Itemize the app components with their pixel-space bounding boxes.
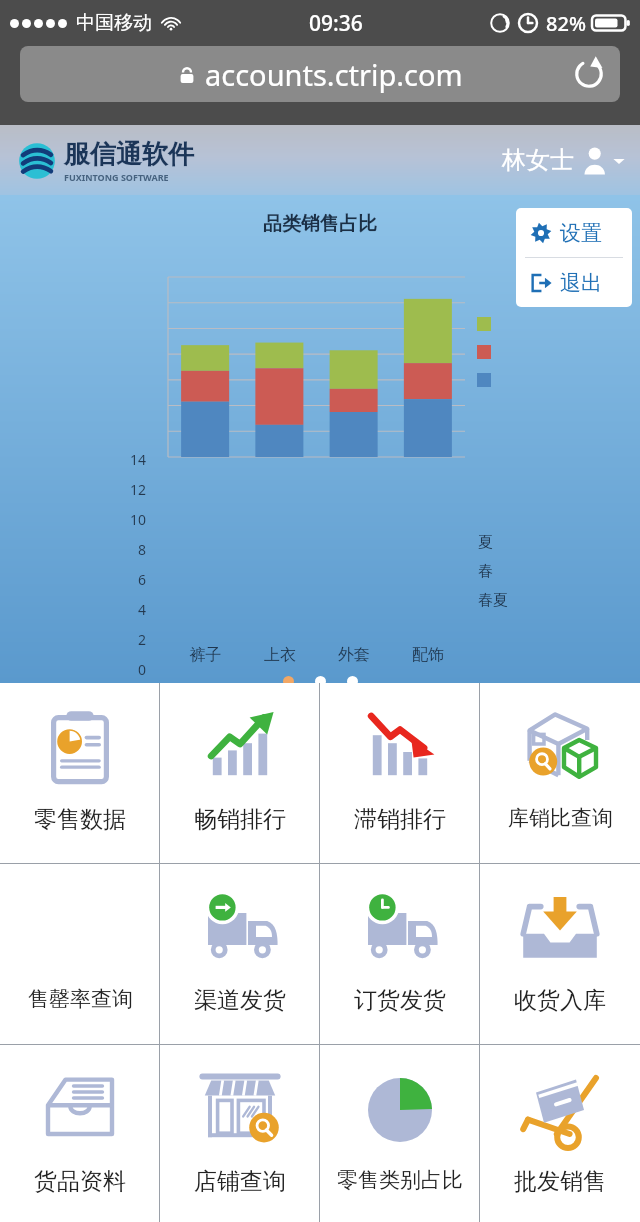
- staticText: 夏: [478, 533, 493, 552]
- staticText: 170, 000: [269, 737, 373, 772]
- staticText: 30天: [506, 737, 562, 773]
- staticText: 6: [124, 570, 146, 589]
- staticText: 售罄率查询: [28, 986, 133, 1012]
- staticText: 零售数据: [34, 805, 126, 834]
- button[interactable]: 林女士: [502, 144, 626, 176]
- staticText: 库销比查询: [508, 805, 613, 831]
- staticText: 批发销售: [514, 1167, 606, 1196]
- staticText: 零售类别占比: [337, 1167, 463, 1193]
- button[interactable]: 设置: [516, 208, 632, 257]
- other: Account: [580, 144, 612, 176]
- staticText: 8: [124, 540, 146, 559]
- staticText: 滞销排行: [354, 805, 446, 834]
- staticText: 订货发货: [354, 986, 446, 1015]
- staticText: FUXINTONG SOFTWARE: [64, 171, 169, 183]
- button[interactable]: 订货发货: [320, 864, 480, 1044]
- staticText: 品类销售占比: [263, 212, 377, 236]
- staticText: 今日业绩: [67, 705, 147, 730]
- button[interactable]: 退出: [516, 258, 632, 307]
- staticText: 店铺查询: [194, 1167, 286, 1196]
- staticText: 1000, 000: [48, 814, 167, 849]
- staticText: 渠道发货: [194, 986, 286, 1015]
- staticText: 0: [124, 660, 146, 679]
- staticText: 昨日毛利: [281, 782, 361, 807]
- staticText: 设置: [560, 220, 602, 246]
- staticText: 4: [124, 600, 146, 619]
- button[interactable]: 库销比查询: [480, 683, 640, 863]
- staticText: 2: [124, 630, 146, 649]
- button[interactable]: 渠道发货: [160, 864, 320, 1044]
- button[interactable]: 零售类别占比: [320, 1045, 480, 1222]
- staticText: 09:36: [309, 9, 363, 38]
- button[interactable]: 售罄率查询: [0, 864, 160, 1044]
- staticText: 今日毛利: [281, 705, 361, 730]
- staticText: 收货入库: [514, 986, 606, 1015]
- staticText: 12: [124, 480, 146, 499]
- staticText: 库存可销: [494, 705, 574, 730]
- staticText: 配饰: [391, 645, 465, 665]
- staticText: 退出: [560, 270, 602, 296]
- staticText: 82%: [546, 10, 586, 37]
- staticText: 林女士: [502, 145, 574, 175]
- staticText: 裤子: [168, 645, 243, 665]
- staticText: 上衣: [243, 645, 317, 665]
- button[interactable]: 货品资料: [0, 1045, 160, 1222]
- button[interactable]: 零售数据: [0, 683, 160, 863]
- staticText: 200, 000: [269, 814, 373, 849]
- button[interactable]: 收货入库: [480, 864, 640, 1044]
- button[interactable]: 店铺查询: [160, 1045, 320, 1222]
- staticText: 春夏: [478, 591, 508, 610]
- button[interactable]: 滞销排行: [320, 683, 480, 863]
- staticText: 14: [124, 450, 146, 469]
- staticText: 3次/年: [495, 815, 573, 851]
- button[interactable]: 畅销排行: [160, 683, 320, 863]
- staticText: 春: [478, 562, 493, 581]
- staticText: 昨日业绩: [67, 782, 147, 807]
- staticText: accounts.ctrip.com: [205, 55, 463, 94]
- staticText: 10: [124, 510, 146, 529]
- staticText: 畅销排行: [194, 805, 286, 834]
- staticText: 999, 000: [55, 737, 159, 772]
- button[interactable]: Reload: [572, 57, 606, 91]
- button[interactable]: accounts.ctrip.com: [20, 46, 620, 102]
- staticText: 货品资料: [34, 1167, 126, 1196]
- staticText: 外套: [317, 645, 391, 665]
- staticText: 中国移动: [76, 11, 152, 35]
- staticText: 服信通软件: [64, 138, 194, 171]
- button[interactable]: 批发销售: [480, 1045, 640, 1222]
